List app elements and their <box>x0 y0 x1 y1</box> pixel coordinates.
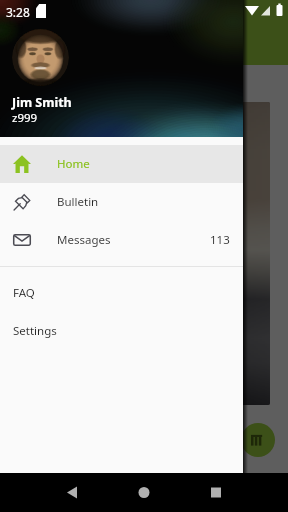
staticText: Jim Smith <box>12 94 72 111</box>
button[interactable]: Messages <box>0 221 243 259</box>
staticText: Settings <box>13 323 57 339</box>
button[interactable]: Bulletin <box>0 183 243 221</box>
staticText: Home <box>57 156 90 172</box>
button[interactable]: Add <box>241 423 275 457</box>
staticText: Bulletin <box>57 194 99 210</box>
staticText: 113 <box>210 232 230 248</box>
button[interactable]: FAQ <box>0 274 243 312</box>
staticText: FAQ <box>13 285 35 301</box>
button[interactable]: Home <box>0 145 243 183</box>
staticText: z999 <box>12 110 38 126</box>
staticText: 3:28 <box>6 4 30 20</box>
staticText: Messages <box>57 232 111 248</box>
button[interactable]: Settings <box>0 312 243 350</box>
